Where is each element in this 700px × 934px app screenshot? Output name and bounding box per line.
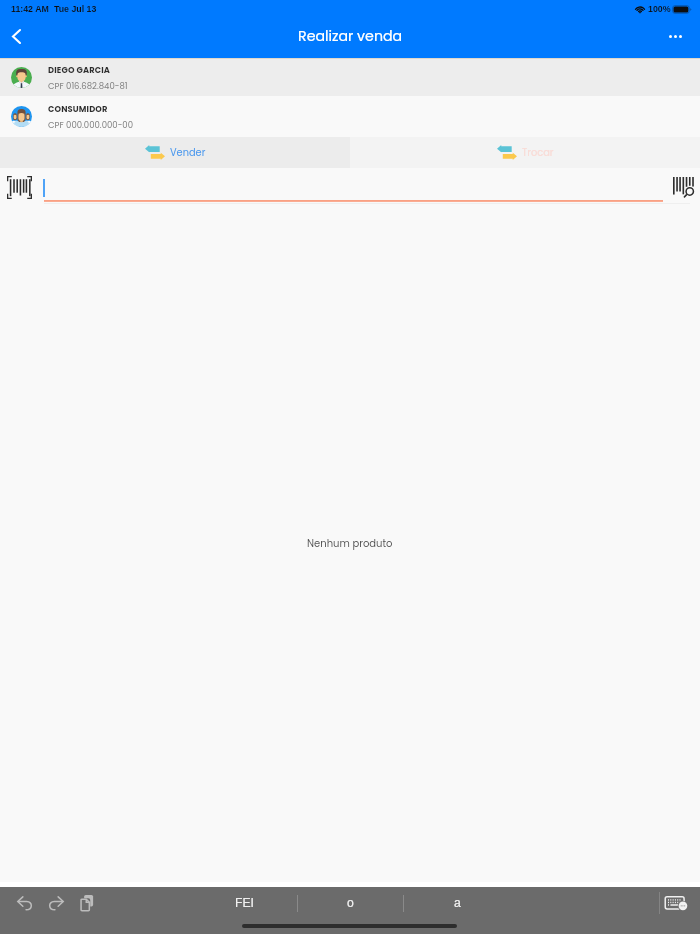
button[interactable]: Redo bbox=[44, 891, 68, 915]
button[interactable]: a bbox=[404, 890, 510, 916]
staticText: CPF 000.000.000-00 bbox=[48, 119, 134, 131]
button[interactable]: Search barcode bbox=[672, 176, 694, 198]
button[interactable]: Hide keyboard bbox=[664, 895, 689, 911]
button[interactable]: DIEGO GARCIA bbox=[0, 59, 700, 96]
staticText: DIEGO GARCIA bbox=[48, 64, 111, 76]
staticText: o bbox=[347, 896, 354, 910]
staticText: Trocar bbox=[522, 146, 554, 160]
staticText: 11:42 AM bbox=[11, 4, 49, 14]
staticText: FEI bbox=[235, 896, 254, 910]
button[interactable]: Paste bbox=[75, 891, 99, 915]
staticText: CONSUMIDOR bbox=[48, 103, 108, 115]
button[interactable]: Undo bbox=[13, 891, 37, 915]
staticText: Realizar venda bbox=[298, 26, 403, 46]
staticText: Vender bbox=[170, 146, 206, 160]
staticText: Tue Jul 13 bbox=[54, 4, 97, 14]
staticText: 100% bbox=[648, 4, 671, 14]
staticText: CPF 016.682.840-81 bbox=[48, 80, 128, 92]
button[interactable]: o bbox=[298, 890, 403, 916]
button[interactable]: Vender bbox=[0, 137, 350, 168]
staticText: a bbox=[454, 896, 461, 910]
button[interactable]: CONSUMIDOR bbox=[0, 96, 700, 137]
button[interactable]: More options bbox=[655, 17, 695, 55]
button[interactable]: Trocar bbox=[350, 137, 700, 168]
button[interactable]: Back bbox=[0, 17, 32, 55]
button[interactable]: Scan barcode bbox=[6, 175, 32, 199]
staticText: Nenhum produto bbox=[307, 536, 393, 550]
button[interactable]: FEI bbox=[191, 890, 297, 916]
